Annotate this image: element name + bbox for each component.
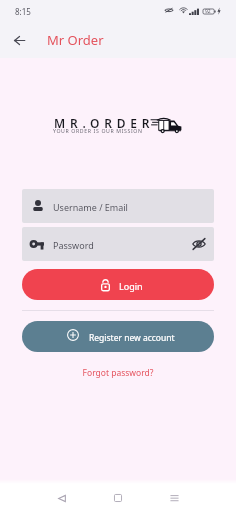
button[interactable]: Recent apps <box>160 484 188 512</box>
other: Show password <box>192 238 206 250</box>
button[interactable]: Login <box>22 269 214 300</box>
staticText: 8:15 <box>15 6 31 17</box>
staticText: Password <box>53 239 94 251</box>
button[interactable]: Back <box>48 484 76 512</box>
staticText: YOUR ORDER IS OUR MISSION <box>53 127 143 134</box>
button[interactable]: Back <box>5 26 33 54</box>
staticText: MR.ORDER <box>54 115 155 131</box>
staticText: Login <box>119 280 143 292</box>
button[interactable]: Register new account <box>22 321 214 352</box>
staticText: Username / Email <box>53 201 128 213</box>
staticText: Mr Order <box>47 31 104 49</box>
button[interactable]: Home <box>104 484 132 512</box>
staticText: 92 <box>205 8 211 15</box>
button[interactable]: Password <box>22 227 214 261</box>
staticText: Register new account <box>89 332 175 344</box>
button[interactable]: Username / Email <box>22 189 214 223</box>
button[interactable]: Forgot password? <box>0 367 236 379</box>
